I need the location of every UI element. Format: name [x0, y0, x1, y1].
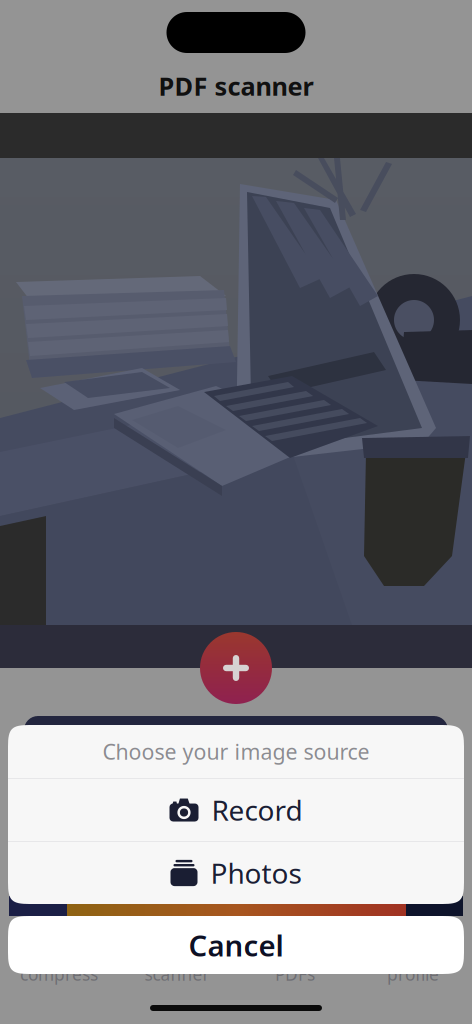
button[interactable]: Add document: [200, 632, 272, 704]
button[interactable]: profile: [354, 948, 472, 1000]
staticText: Record: [211, 791, 302, 829]
staticText: Photos: [210, 854, 301, 892]
button[interactable]: compress: [0, 948, 118, 1000]
staticText: Cancel: [188, 925, 283, 964]
staticText: Choose your image source: [102, 737, 369, 766]
staticText: scanner: [144, 962, 209, 985]
button[interactable]: Record: [8, 779, 464, 841]
button[interactable]: Photos: [8, 842, 464, 904]
button[interactable]: scanner: [118, 948, 236, 1000]
staticText: PDF scanner: [158, 69, 313, 103]
staticText: profile: [387, 962, 439, 985]
staticText: PDFs: [275, 962, 315, 985]
staticText: compress: [20, 962, 98, 985]
button[interactable]: Cancel: [8, 916, 464, 974]
button[interactable]: PDFs: [236, 948, 354, 1000]
